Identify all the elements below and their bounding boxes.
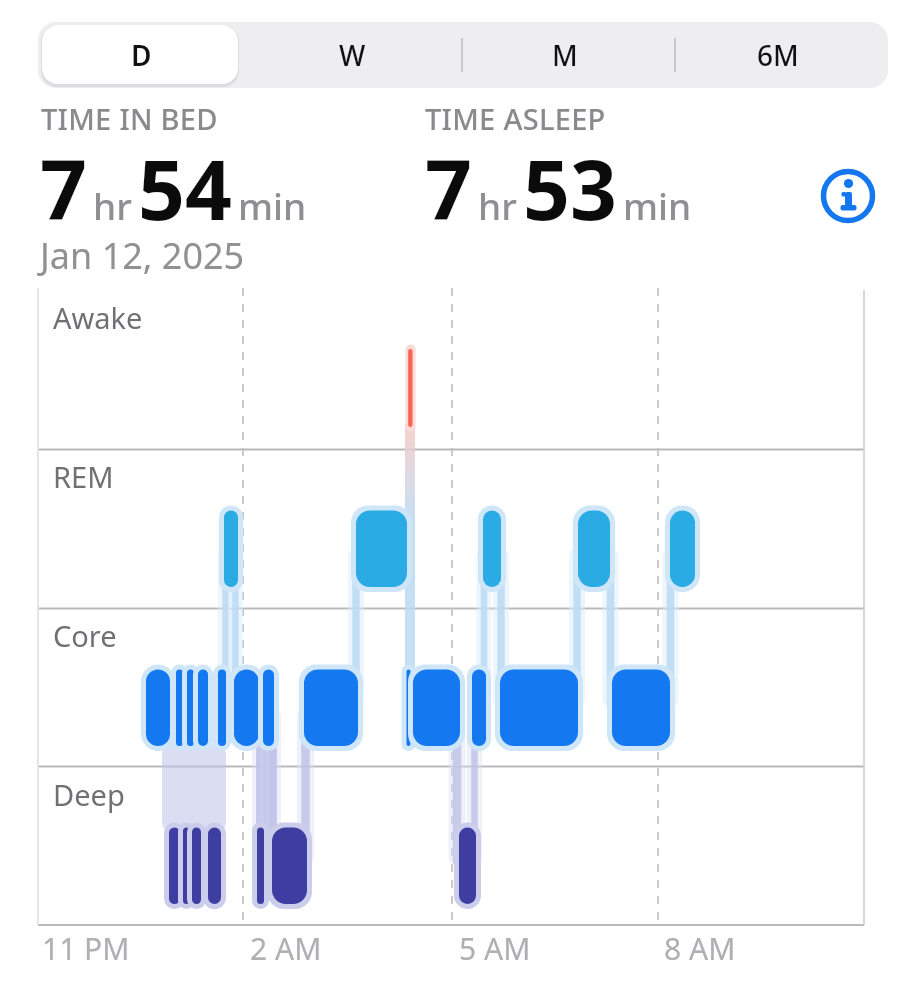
button[interactable]: M — [505, 32, 625, 78]
button[interactable]: 6M — [718, 32, 838, 78]
staticText: 5 AM — [459, 928, 531, 969]
staticText: 7 hr 53 min — [425, 132, 692, 244]
staticText: Awake — [53, 298, 143, 337]
staticText: 11 PM — [42, 928, 130, 969]
staticText: TIME ASLEEP — [425, 99, 606, 138]
button[interactable]: D — [81, 32, 201, 78]
staticText: 8 AM — [664, 928, 736, 969]
staticText: Core — [53, 616, 117, 655]
staticText: M — [552, 36, 578, 74]
staticText: REM — [53, 457, 114, 496]
staticText: 2 AM — [250, 928, 322, 969]
button[interactable]: W — [292, 32, 412, 78]
staticText: D — [131, 36, 152, 74]
staticText: Deep — [53, 775, 125, 814]
staticText: 6M — [757, 36, 799, 74]
staticText: 7 hr 54 min — [40, 132, 307, 244]
staticText: TIME IN BED — [41, 99, 218, 138]
staticText: W — [339, 36, 366, 74]
button[interactable] — [818, 166, 878, 226]
staticText: Jan 12, 2025 — [40, 231, 245, 280]
